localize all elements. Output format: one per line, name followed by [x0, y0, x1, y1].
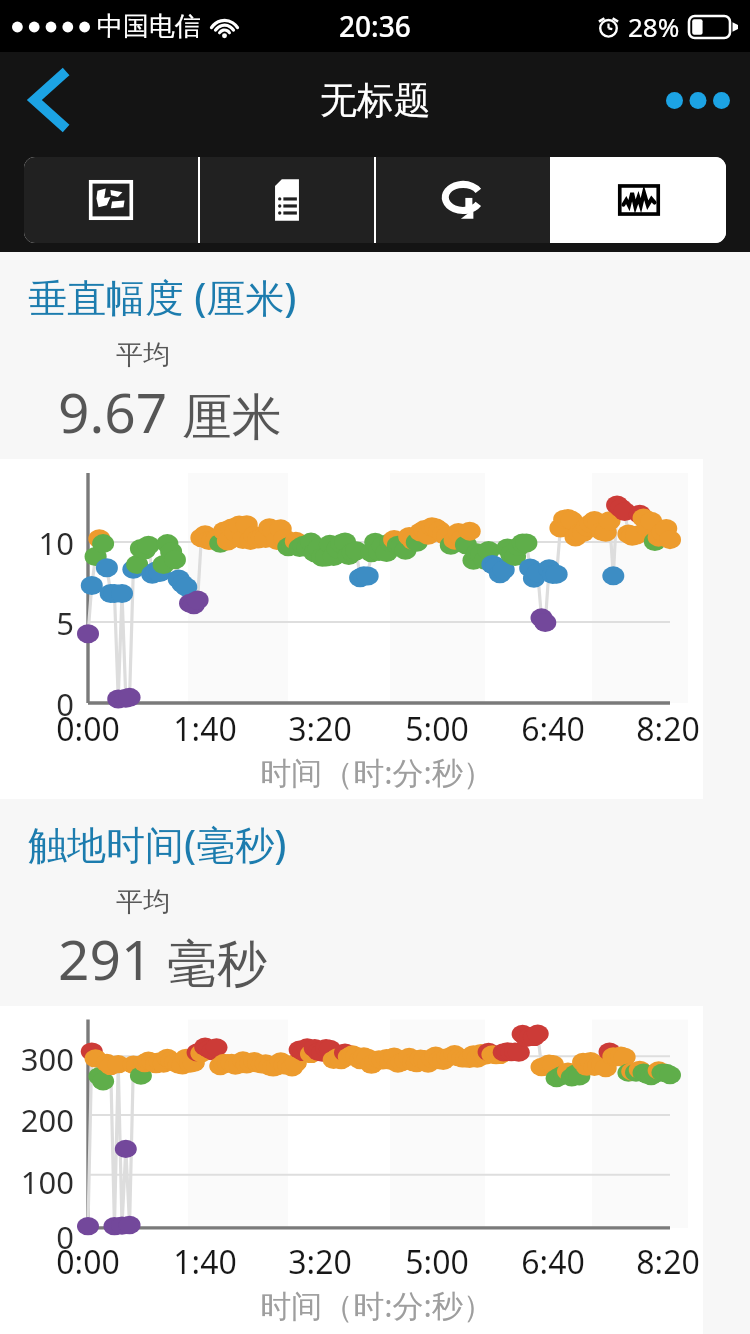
button[interactable]: Laps [376, 157, 550, 243]
staticText: 毫秒 [167, 933, 267, 996]
staticText: 3:20 [265, 1240, 375, 1284]
button[interactable]: Back [0, 52, 96, 148]
button[interactable]: Charts [552, 157, 726, 243]
staticText: 平均 [116, 885, 170, 919]
staticText: 时间（时:分:秒） [127, 1284, 627, 1326]
staticText: 291 [58, 921, 153, 996]
staticText: 3:20 [265, 707, 375, 751]
button[interactable]: Details [200, 157, 374, 243]
staticText: 中国电信 [97, 10, 201, 43]
staticText: 5:00 [382, 1240, 492, 1284]
staticText: 300 [0, 1038, 74, 1080]
staticText: 触地时间(毫秒) [28, 817, 287, 870]
staticText: 时间（时:分:秒） [127, 751, 627, 793]
staticText: 厘米 [182, 386, 282, 449]
staticText: 10 [0, 522, 74, 564]
staticText: 8:20 [613, 707, 723, 751]
button[interactable]: More options [646, 52, 750, 148]
staticText: 5:00 [382, 707, 492, 751]
staticText: 6:40 [498, 1240, 608, 1284]
staticText: 200 [0, 1099, 74, 1141]
staticText: 垂直幅度 (厘米) [28, 270, 297, 323]
staticText: 8:20 [613, 1240, 723, 1284]
staticText: 无标题 [320, 77, 431, 124]
staticText: 5 [0, 602, 74, 644]
staticText: 9.67 [58, 374, 168, 449]
staticText: 1:40 [150, 707, 260, 751]
staticText: 6:40 [498, 707, 608, 751]
button[interactable]: Map [24, 157, 198, 243]
staticText: 0:00 [33, 1240, 143, 1284]
staticText: 20:36 [339, 7, 411, 45]
staticText: 1:40 [150, 1240, 260, 1284]
staticText: 100 [0, 1161, 74, 1203]
staticText: 0:00 [33, 707, 143, 751]
staticText: 0 [0, 683, 74, 725]
staticText: 28% [628, 9, 680, 44]
staticText: 平均 [116, 338, 170, 372]
staticText: 0 [0, 1216, 74, 1258]
